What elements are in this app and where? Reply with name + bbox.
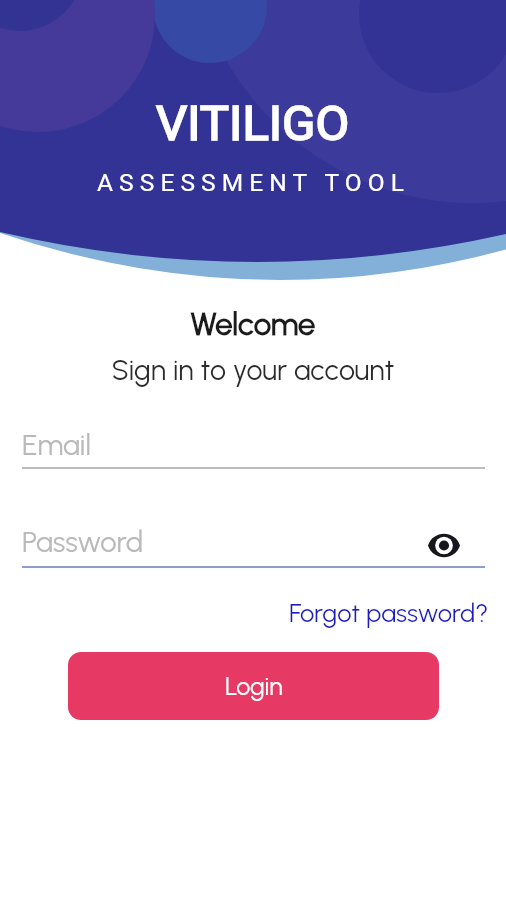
staticText: Email [22,427,91,462]
staticText: ASSESSMENT TOOL [97,168,410,197]
staticText: VITILIGO [156,95,350,152]
button[interactable]: Forgot password? [289,598,506,629]
staticText: Sign in to your account [0,353,506,387]
button[interactable]: Show password [428,523,485,567]
button[interactable]: Login [68,652,439,720]
staticText: Login [225,671,283,701]
staticText: Password [22,524,428,559]
staticText: Welcome [0,306,506,343]
